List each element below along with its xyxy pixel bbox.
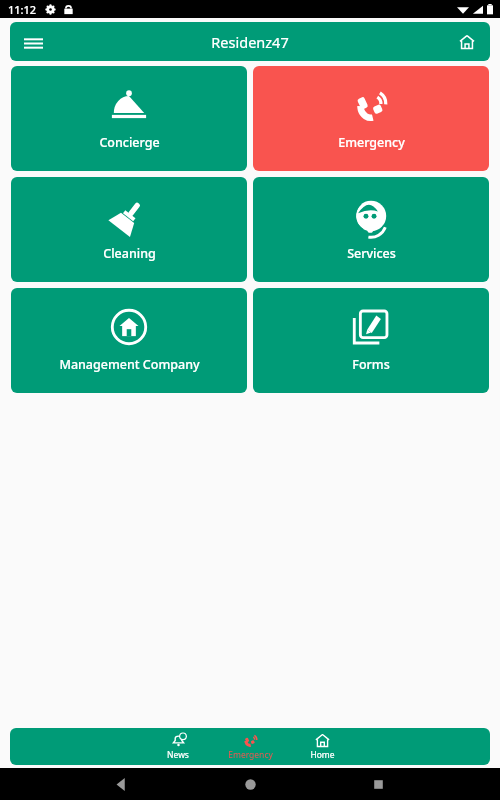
button[interactable]: Home <box>450 25 484 59</box>
staticText: Emergency <box>228 749 273 761</box>
staticText: Forms <box>352 356 390 373</box>
staticText: Management Company <box>59 356 200 373</box>
button[interactable]: Emergency <box>253 66 489 171</box>
button[interactable]: Forms <box>253 288 489 393</box>
staticText: Cleaning <box>103 245 156 262</box>
staticText: 11:12 <box>8 2 37 17</box>
button[interactable]: Menu <box>16 25 50 59</box>
staticText: Concierge <box>99 134 160 151</box>
staticText: Services <box>347 245 396 262</box>
staticText: Emergency <box>338 134 405 151</box>
button[interactable]: News <box>150 733 206 761</box>
button[interactable]: Home <box>294 733 350 761</box>
button[interactable]: Concierge <box>11 66 247 171</box>
button[interactable]: Cleaning <box>11 177 247 282</box>
button[interactable]: Management Company <box>11 288 247 393</box>
staticText: Residenz47 <box>211 32 289 52</box>
staticText: News <box>167 749 189 761</box>
button[interactable]: Emergency <box>222 733 278 761</box>
button[interactable]: Services <box>253 177 489 282</box>
staticText: Home <box>310 749 335 761</box>
